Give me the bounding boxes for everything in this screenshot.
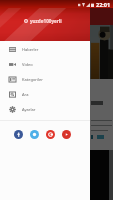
button[interactable]: Ara — [0, 87, 90, 102]
staticText: Video — [22, 62, 33, 67]
button[interactable]: Twitter — [30, 130, 39, 139]
button[interactable]: Video — [0, 57, 90, 72]
staticText: Haberler — [22, 47, 39, 52]
staticText: yuzde100yerli — [30, 18, 62, 24]
button[interactable]: YouTube — [62, 130, 71, 139]
staticText: Kategoriler — [22, 77, 43, 82]
button[interactable]: Kategoriler — [0, 72, 90, 87]
button[interactable]: Haberler — [0, 42, 90, 57]
button[interactable]: Facebook — [14, 130, 23, 139]
staticText: Ara — [22, 92, 29, 97]
button[interactable]: Ayarlar — [0, 102, 90, 117]
staticText: 22:01 — [96, 1, 111, 8]
button[interactable]: Google Plus — [46, 130, 55, 139]
staticText: Ayarlar — [22, 107, 36, 112]
